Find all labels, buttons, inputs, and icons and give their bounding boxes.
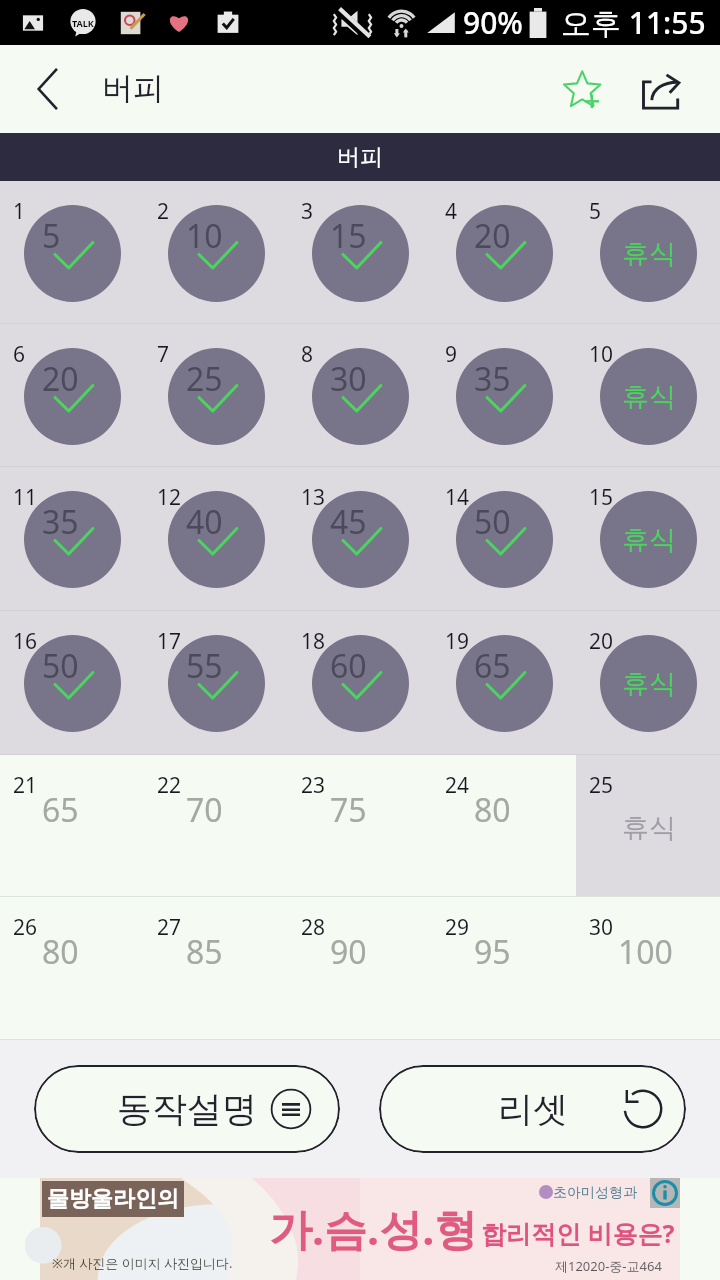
staticText: 35 — [474, 357, 511, 401]
staticText: 26 — [13, 913, 38, 942]
staticText: 29 — [445, 913, 470, 942]
staticText: 13 — [301, 483, 326, 512]
button[interactable]: 5 — [576, 181, 720, 323]
staticText: 휴식 — [622, 811, 676, 845]
staticText: 5 — [589, 197, 602, 226]
staticText: 12 — [157, 483, 182, 512]
staticText: 휴식 — [622, 237, 676, 271]
button[interactable]: 22 — [144, 755, 288, 896]
staticText: 20 — [42, 357, 79, 401]
button[interactable]: 19 — [432, 611, 576, 754]
staticText: 물방울라인의 — [47, 1185, 179, 1213]
button[interactable]: 16 — [0, 611, 144, 754]
staticText: 45 — [330, 500, 367, 544]
button[interactable]: 21 — [0, 755, 144, 896]
button[interactable]: 20 — [576, 611, 720, 754]
staticText: 초아미성형과 — [553, 1184, 637, 1202]
staticText: 20 — [589, 627, 614, 656]
staticText: 합리적인 비용은? — [481, 1216, 675, 1250]
staticText: 50 — [42, 644, 79, 688]
staticText: 10 — [186, 214, 223, 258]
staticText: 18 — [301, 627, 326, 656]
button[interactable]: 리셋 — [379, 1065, 686, 1153]
staticText: 90 — [330, 930, 367, 974]
button[interactable]: 14 — [432, 467, 576, 610]
staticText: 90% — [463, 2, 523, 43]
staticText: 80 — [42, 930, 79, 974]
staticText: ※개 사진은 이미지 사진입니다. — [52, 1254, 233, 1272]
staticText: 휴식 — [622, 380, 676, 414]
staticText: 50 — [474, 500, 511, 544]
button[interactable]: 24 — [432, 755, 576, 896]
staticText: 40 — [186, 500, 223, 544]
button[interactable]: Add to favorites — [536, 45, 621, 133]
staticText: 25 — [589, 771, 614, 800]
button[interactable]: 7 — [144, 324, 288, 466]
staticText: 60 — [330, 644, 367, 688]
staticText: 제12020-중-교464 — [555, 1257, 662, 1275]
staticText: 9 — [445, 340, 458, 369]
button[interactable]: 17 — [144, 611, 288, 754]
button[interactable]: 8 — [288, 324, 432, 466]
staticText: 16 — [13, 627, 38, 656]
button[interactable]: 13 — [288, 467, 432, 610]
staticText: 95 — [474, 930, 511, 974]
staticText: 10 — [589, 340, 614, 369]
staticText: 버피 — [102, 69, 164, 108]
button[interactable]: 9 — [432, 324, 576, 466]
button[interactable]: 6 — [0, 324, 144, 466]
button[interactable]: 2 — [144, 181, 288, 323]
button[interactable]: 1 — [0, 181, 144, 323]
staticText: 동작설명 — [117, 1087, 257, 1131]
staticText: 22 — [157, 771, 182, 800]
staticText: 21 — [13, 771, 38, 800]
staticText: 7 — [157, 340, 170, 369]
staticText: 85 — [186, 930, 223, 974]
button[interactable]: 30 — [576, 897, 720, 1039]
button[interactable]: 29 — [432, 897, 576, 1039]
staticText: 8 — [301, 340, 314, 369]
staticText: 11 — [13, 483, 38, 512]
button[interactable]: Back — [0, 45, 94, 133]
staticText: 15 — [589, 483, 614, 512]
staticText: 버피 — [337, 143, 383, 172]
staticText: TALK — [72, 17, 94, 29]
button[interactable]: 4 — [432, 181, 576, 323]
staticText: 17 — [157, 627, 182, 656]
button[interactable]: 10 — [576, 324, 720, 466]
staticText: 100 — [618, 930, 673, 974]
staticText: 휴식 — [622, 523, 676, 557]
button[interactable]: 12 — [144, 467, 288, 610]
button[interactable]: 28 — [288, 897, 432, 1039]
staticText: 15 — [330, 214, 367, 258]
button[interactable]: 26 — [0, 897, 144, 1039]
staticText: 3 — [301, 197, 314, 226]
staticText: 65 — [474, 644, 511, 688]
staticText: 휴식 — [622, 667, 676, 701]
button[interactable]: Share — [621, 45, 699, 133]
staticText: 19 — [445, 627, 470, 656]
button[interactable]: 23 — [288, 755, 432, 896]
staticText: 65 — [42, 788, 79, 832]
button[interactable]: 3 — [288, 181, 432, 323]
button[interactable]: 동작설명 — [34, 1065, 340, 1153]
staticText: 35 — [42, 500, 79, 544]
staticText: 2 — [157, 197, 170, 226]
staticText: 24 — [445, 771, 470, 800]
button[interactable]: 27 — [144, 897, 288, 1039]
staticText: 80 — [474, 788, 511, 832]
button[interactable]: 15 — [576, 467, 720, 610]
button[interactable]: 18 — [288, 611, 432, 754]
button[interactable]: 25 — [576, 755, 720, 896]
button[interactable]: 11 — [0, 467, 144, 610]
staticText: 28 — [301, 913, 326, 942]
staticText: 14 — [445, 483, 470, 512]
staticText: 6 — [13, 340, 26, 369]
staticText: 23 — [301, 771, 326, 800]
staticText: 25 — [186, 357, 223, 401]
staticText: 4 — [445, 197, 458, 226]
button[interactable]: Advertisement — [40, 1178, 680, 1280]
staticText: 55 — [186, 644, 223, 688]
staticText: 27 — [157, 913, 182, 942]
staticText: 75 — [330, 788, 367, 832]
